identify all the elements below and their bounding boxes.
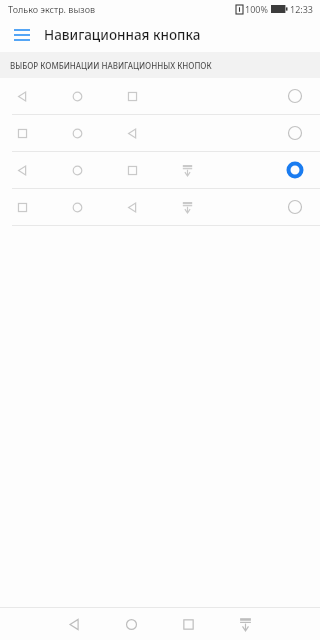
staticText: ВЫБОР КОМБИНАЦИИ НАВИГАЦИОННЫХ КНОПОК: [10, 60, 212, 71]
button[interactable]: [0, 189, 320, 225]
button[interactable]: Notification panel: [217, 608, 274, 640]
button[interactable]: Back: [46, 608, 103, 640]
staticText: Только экстр. вызов: [8, 3, 96, 15]
staticText: 100%: [245, 3, 268, 15]
button[interactable]: [0, 152, 320, 188]
button[interactable]: [0, 78, 320, 114]
button[interactable]: Home: [103, 608, 160, 640]
staticText: 12:33: [290, 3, 314, 15]
button[interactable]: Recents: [160, 608, 217, 640]
staticText: Навигационная кнопка: [44, 26, 201, 44]
button[interactable]: Menu: [0, 18, 44, 52]
button[interactable]: [0, 115, 320, 151]
